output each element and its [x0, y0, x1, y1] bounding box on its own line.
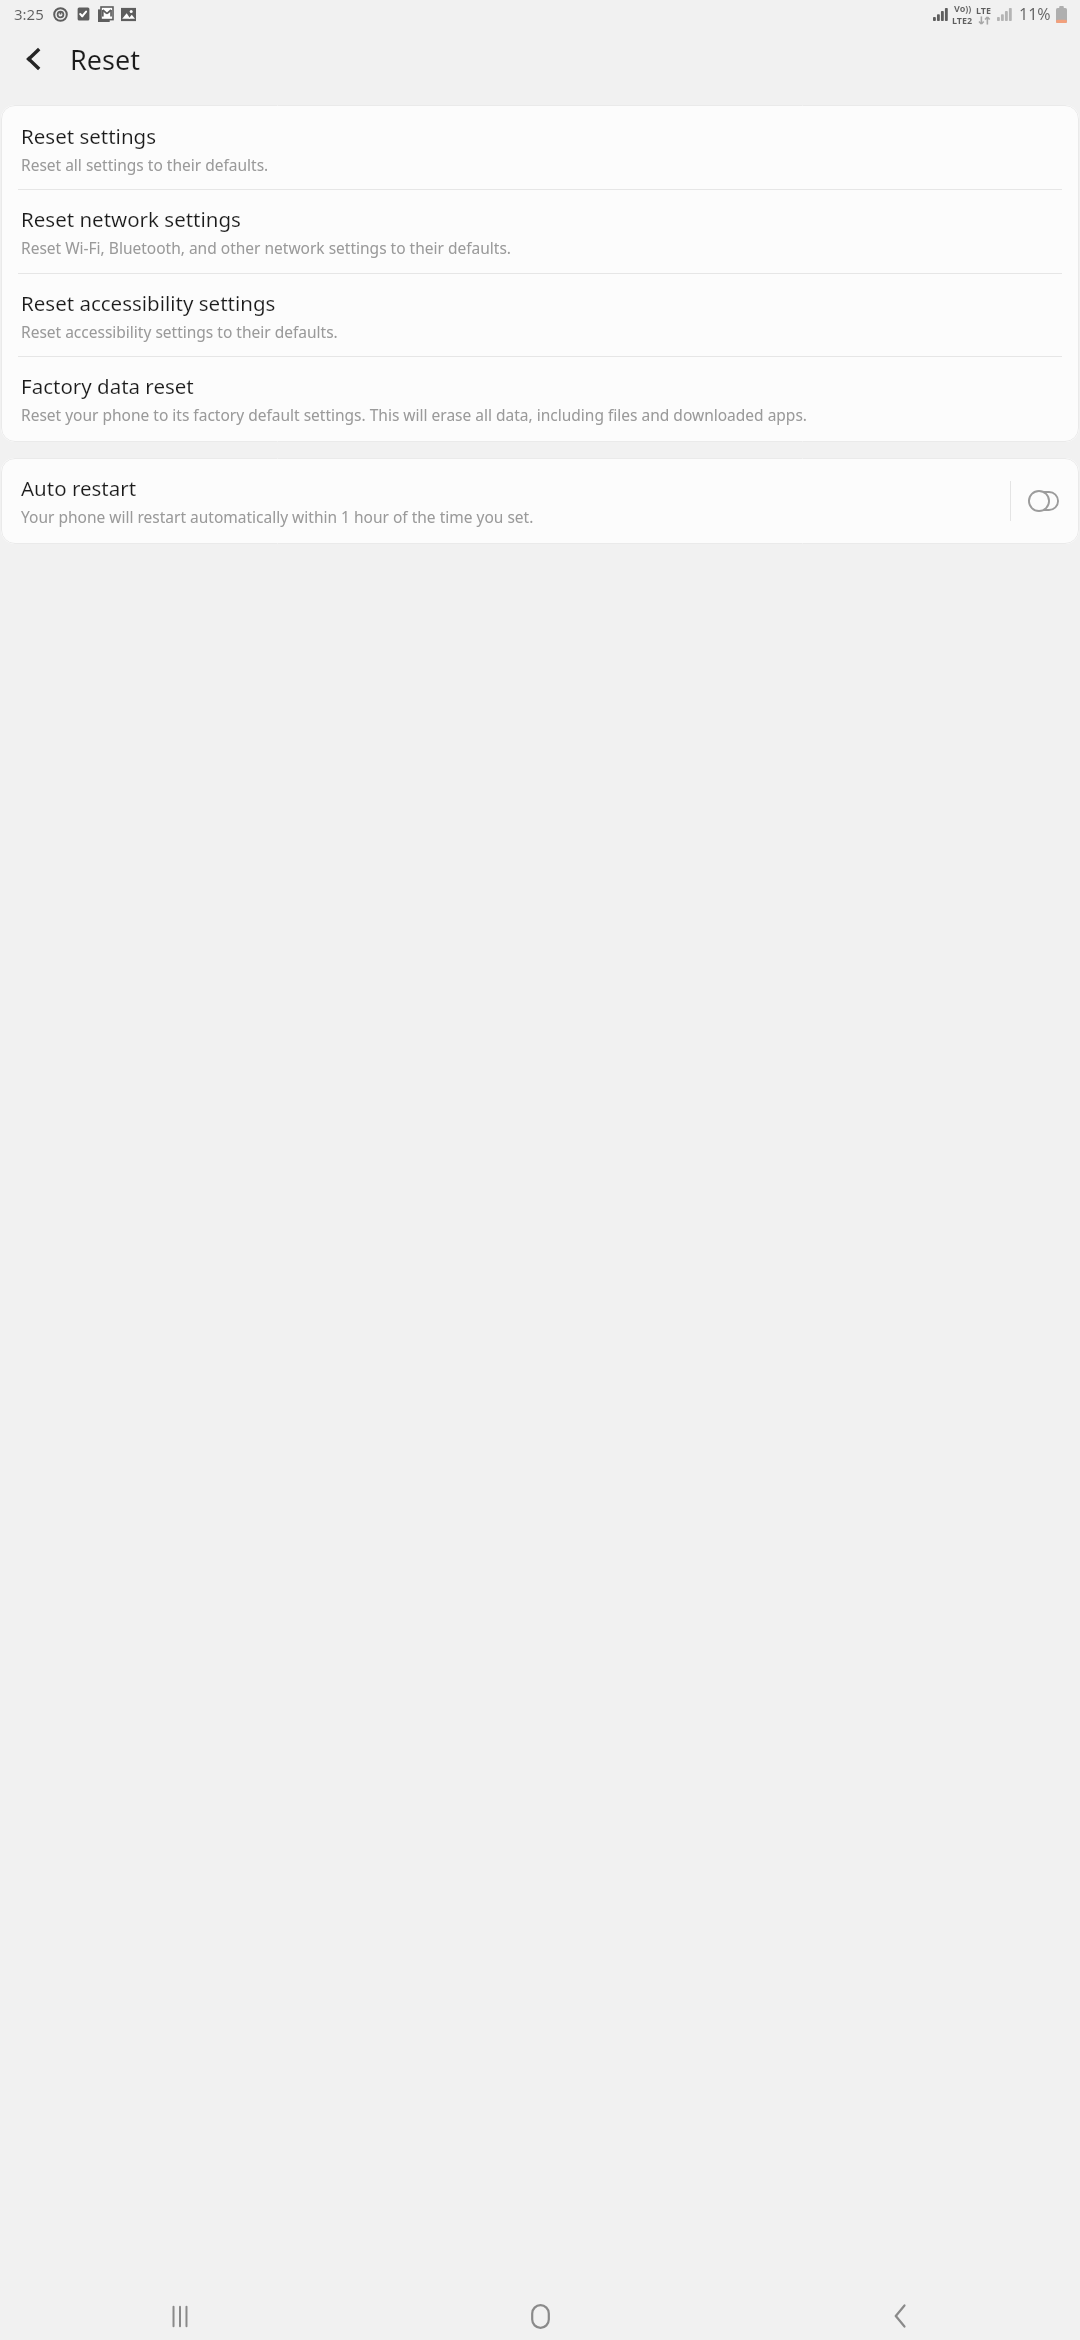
- staticText: Reset settings: [21, 122, 156, 150]
- staticText: Reset accessibility settings: [21, 289, 276, 317]
- button[interactable]: Reset settings: [1, 105, 1079, 189]
- staticText: Your phone will restart automatically wi…: [21, 506, 534, 527]
- button[interactable]: Home: [360, 2292, 720, 2340]
- staticText: 3:25: [14, 4, 44, 24]
- staticText: Reset all settings to their defaults.: [21, 154, 269, 175]
- button[interactable]: Reset network settings: [1, 190, 1079, 273]
- staticText: Reset Wi-Fi, Bluetooth, and other networ…: [21, 237, 511, 258]
- staticText: Factory data reset: [21, 372, 194, 400]
- button[interactable]: Back: [6, 31, 62, 87]
- button[interactable]: Factory data reset: [1, 357, 1079, 442]
- staticText: Reset your phone to its factory default …: [21, 404, 807, 425]
- button[interactable]: Reset accessibility settings: [1, 274, 1079, 356]
- staticText: 11%: [1019, 3, 1051, 25]
- staticText: LTE2: [952, 14, 973, 26]
- button[interactable]: Auto restart toggle, off: [1021, 484, 1065, 518]
- button[interactable]: Back: [720, 2292, 1080, 2340]
- staticText: Auto restart: [21, 474, 137, 502]
- staticText: Reset network settings: [21, 205, 241, 233]
- staticText: LTE: [976, 4, 992, 16]
- staticText: Reset: [70, 41, 140, 78]
- button[interactable]: Auto restart: [1, 458, 1079, 544]
- button[interactable]: Recents: [0, 2292, 360, 2340]
- staticText: Reset accessibility settings to their de…: [21, 321, 338, 342]
- staticText: Vo)): [954, 2, 972, 14]
